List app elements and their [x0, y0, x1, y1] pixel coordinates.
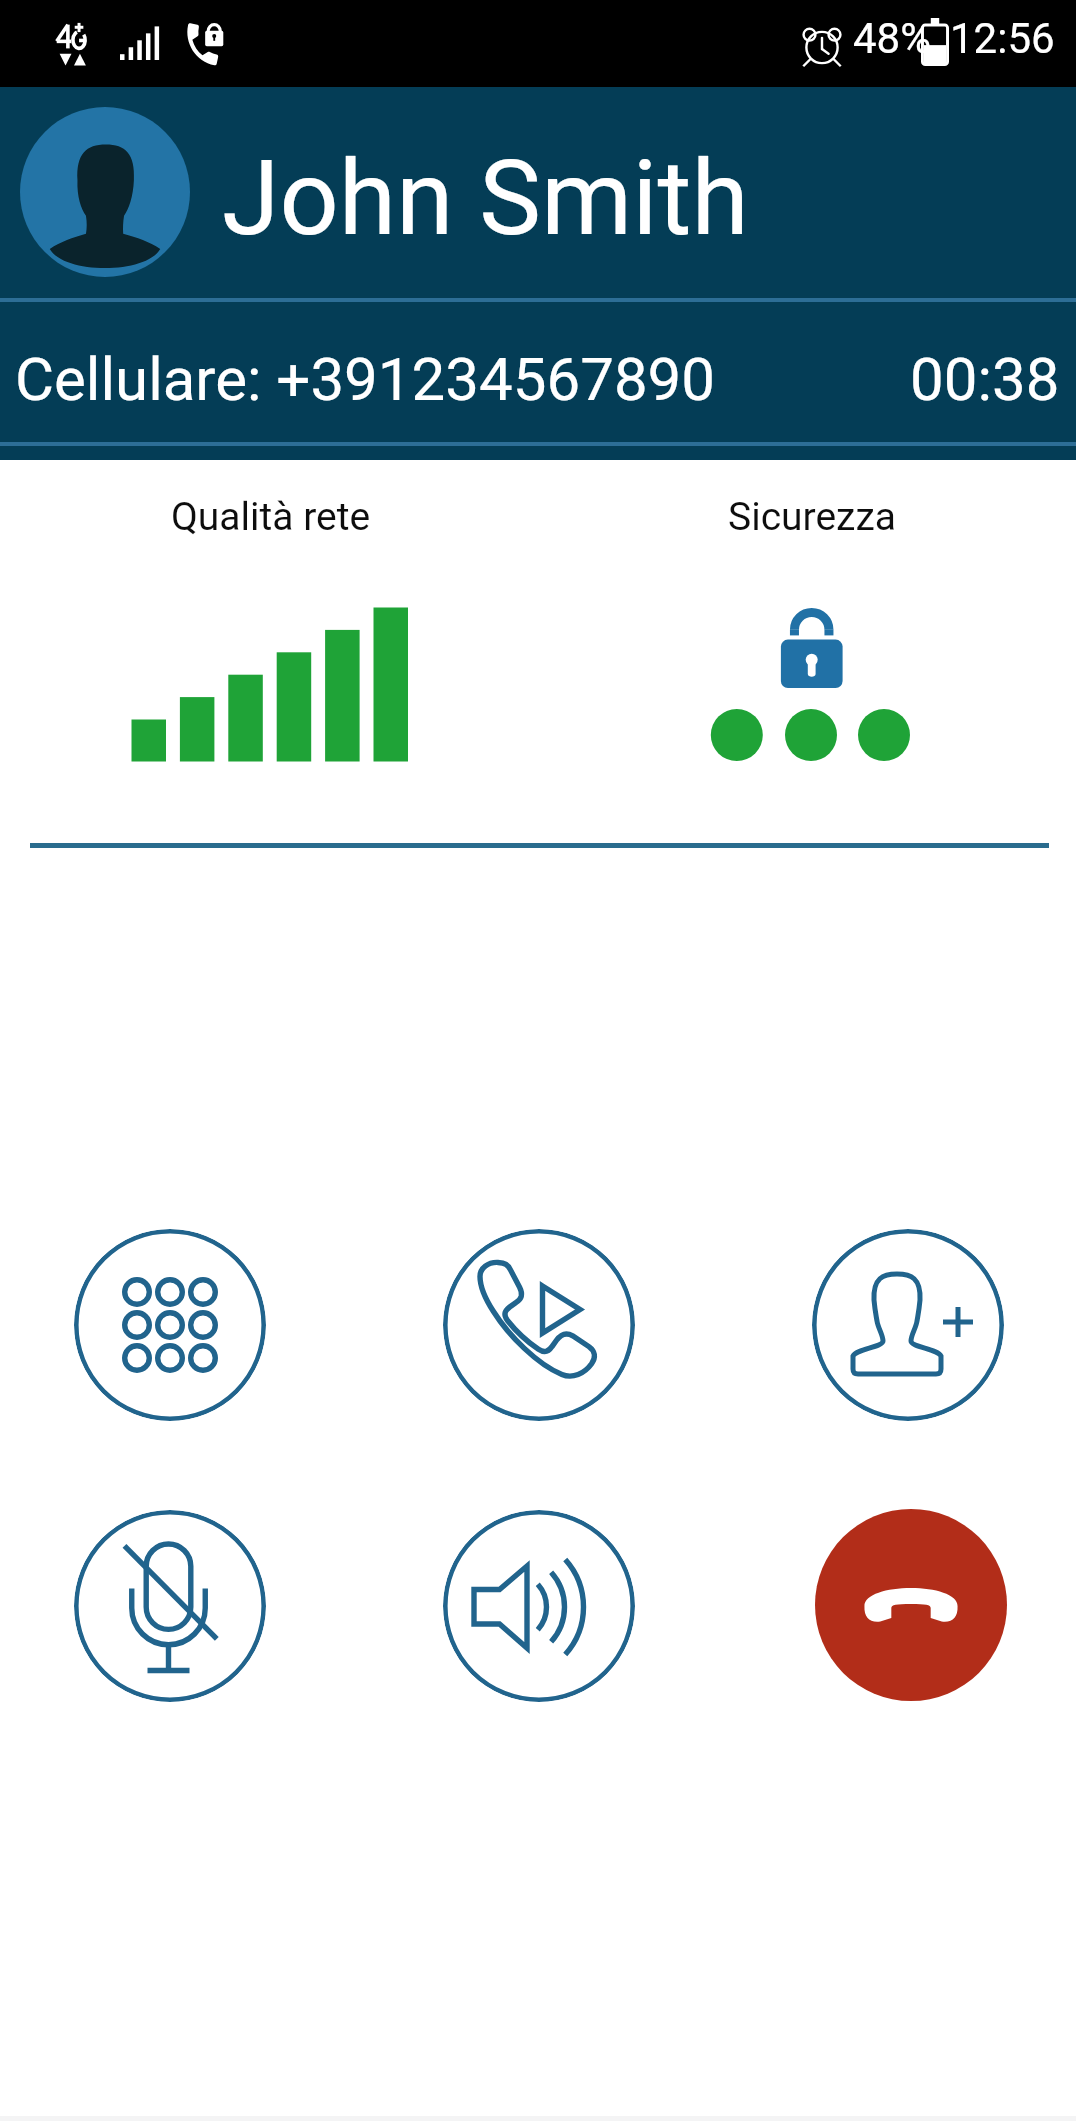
button[interactable]: Transfer call	[443, 1229, 635, 1421]
staticText: Cellulare: +391234567890	[15, 344, 716, 414]
button[interactable]: Mute microphone	[74, 1510, 266, 1702]
button[interactable]: Add contact	[812, 1229, 1004, 1421]
button[interactable]: Keypad	[74, 1229, 266, 1421]
staticText: 12:56	[950, 14, 1055, 63]
staticText: John Smith	[222, 138, 749, 260]
staticText: 00:38	[910, 344, 1060, 414]
button[interactable]: Speaker	[443, 1510, 635, 1702]
staticText: Qualità rete	[171, 494, 371, 540]
staticText: 48%	[853, 14, 931, 63]
button[interactable]: End call	[815, 1509, 1007, 1701]
staticText: Sicurezza	[728, 494, 896, 540]
